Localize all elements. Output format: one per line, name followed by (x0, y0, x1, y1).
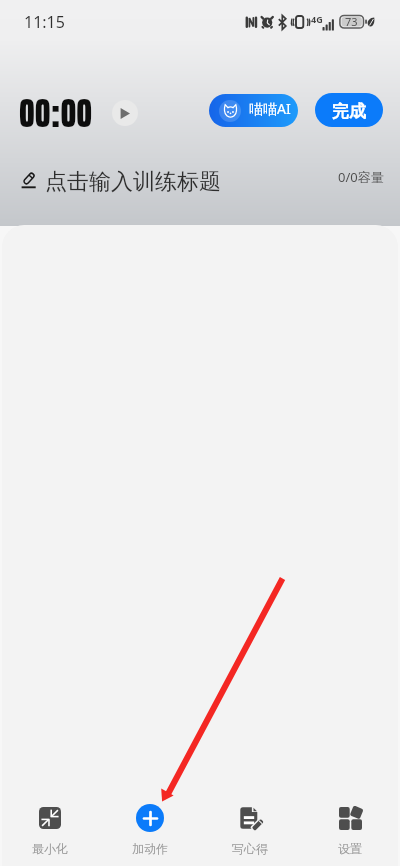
button[interactable]: 点击输入训练标题 (21, 166, 221, 194)
button[interactable]: 完成 (315, 93, 383, 127)
button[interactable]: Start timer (112, 100, 138, 126)
staticText: 00:00 (19, 82, 93, 142)
button[interactable]: Add action (100, 766, 200, 866)
button[interactable]: 最小化 (0, 766, 100, 866)
staticText: 0/0容量 (338, 168, 384, 186)
staticText: 喵喵AI (249, 99, 291, 118)
button[interactable]: 设置 (300, 766, 400, 866)
staticText: 设置 (338, 841, 362, 856)
staticText: 点击输入训练标题 (45, 168, 221, 196)
button[interactable]: 喵喵AI (209, 94, 298, 127)
staticText: 完成 (332, 101, 366, 122)
staticText: 最小化 (32, 841, 68, 856)
button[interactable]: 写心得 (200, 766, 300, 866)
staticText: 加动作 (132, 841, 168, 856)
staticText: 11:15 (24, 11, 65, 33)
staticText: 4G (311, 13, 323, 25)
staticText: 写心得 (232, 841, 268, 856)
staticText: 73 (345, 14, 358, 29)
other: Add action (136, 804, 164, 832)
